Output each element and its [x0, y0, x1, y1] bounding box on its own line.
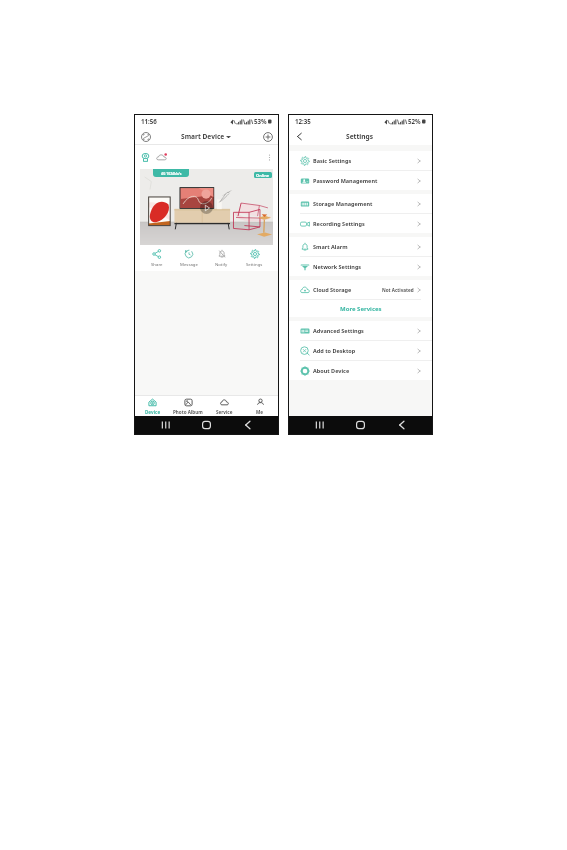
- staticText: Password Management: [313, 177, 378, 184]
- button[interactable]: Smart Alarm: [289, 237, 432, 256]
- staticText: Device: [145, 409, 161, 415]
- button[interactable]: Basic Settings: [289, 151, 432, 170]
- button[interactable]: Back: [293, 130, 306, 143]
- staticText: Photo Album: [173, 409, 203, 415]
- button[interactable]: Network Settings: [289, 257, 432, 276]
- button[interactable]: Storage Management: [289, 194, 432, 213]
- staticText: Basic Settings: [313, 157, 352, 164]
- staticText: Smart Device: [181, 132, 225, 141]
- button[interactable]: Add to Desktop: [289, 341, 432, 360]
- staticText: 52%: [408, 117, 421, 125]
- staticText: Cloud Storage: [313, 286, 352, 293]
- button[interactable]: More Services: [289, 300, 432, 317]
- button[interactable]: Settings: [238, 245, 271, 271]
- button[interactable]: Share: [141, 245, 173, 271]
- button[interactable]: About Device: [289, 361, 432, 380]
- button[interactable]: Smart Device: [181, 132, 231, 141]
- staticText: Network Settings: [313, 263, 362, 270]
- staticText: Settings: [246, 261, 263, 267]
- button[interactable]: Advanced Settings: [289, 321, 432, 340]
- staticText: Settings: [346, 132, 374, 141]
- staticText: More Services: [340, 305, 382, 313]
- button[interactable]: Notify: [205, 245, 238, 271]
- button[interactable]: Device: [135, 396, 170, 416]
- staticText: About Device: [313, 367, 350, 374]
- staticText: Notify: [215, 261, 228, 267]
- staticText: Recording Settings: [313, 220, 365, 227]
- button[interactable]: Password Management: [289, 171, 432, 190]
- staticText: Share: [151, 261, 163, 267]
- button[interactable]: More options: [266, 154, 273, 161]
- staticText: Advanced Settings: [313, 327, 364, 334]
- staticText: 11:56: [141, 117, 157, 125]
- button[interactable]: Add device: [261, 130, 274, 143]
- button[interactable]: Photo Album: [170, 396, 206, 416]
- button[interactable]: Cloud Storage: [289, 280, 432, 299]
- button[interactable]: Service: [206, 396, 242, 416]
- staticText: Message: [180, 261, 198, 267]
- button[interactable]: Message: [173, 245, 205, 271]
- staticText: Me: [256, 409, 264, 415]
- staticText: Storage Management: [313, 200, 373, 207]
- staticText: 12:35: [295, 117, 311, 125]
- staticText: 53%: [254, 117, 267, 125]
- button[interactable]: Scan QR code: [139, 130, 152, 143]
- button[interactable]: Play video: [200, 201, 213, 214]
- staticText: Add to Desktop: [313, 347, 356, 354]
- button[interactable]: Me: [242, 396, 278, 416]
- staticText: Service: [216, 409, 233, 415]
- staticText: Not Activated: [382, 287, 414, 293]
- staticText: Smart Alarm: [313, 243, 348, 250]
- staticText: Online: [256, 173, 270, 178]
- button[interactable]: Recording Settings: [289, 214, 432, 233]
- staticText: 4G 1024kb/s: [161, 171, 182, 176]
